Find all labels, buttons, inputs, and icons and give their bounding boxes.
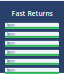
staticText: Item xyxy=(7,22,15,27)
staticText: Item xyxy=(7,58,15,63)
staticText: Item xyxy=(7,40,15,45)
staticText: Item xyxy=(7,67,15,72)
staticText: Item xyxy=(7,31,15,36)
staticText: Fast Returns xyxy=(11,9,52,18)
staticText: Item xyxy=(7,49,15,54)
